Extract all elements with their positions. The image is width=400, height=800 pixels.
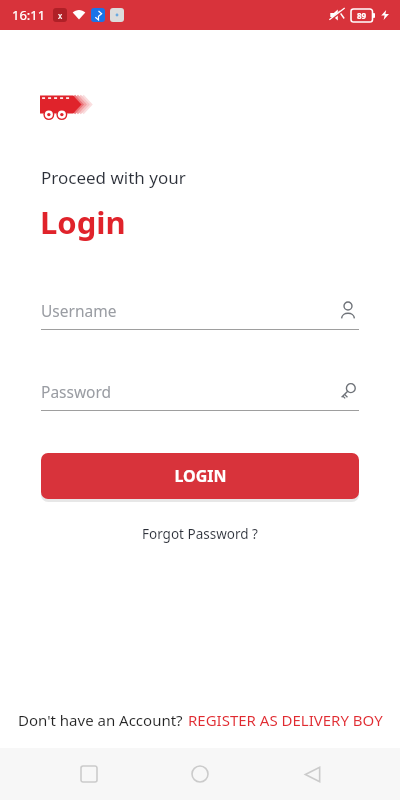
other: Username xyxy=(337,299,359,321)
button[interactable]: Forgot Password ? xyxy=(130,521,270,547)
button[interactable]: REGISTER AS DELIVERY BOY xyxy=(188,710,383,730)
staticText: x xyxy=(58,10,63,21)
button[interactable]: Password xyxy=(0,380,400,411)
staticText: LOGIN xyxy=(174,465,227,487)
button[interactable]: Back xyxy=(289,751,335,797)
button[interactable]: Username xyxy=(0,299,400,330)
staticText: Forgot Password ? xyxy=(142,525,258,543)
staticText: 89 xyxy=(357,10,367,21)
button[interactable]: Recent apps xyxy=(66,751,112,797)
staticText: Username xyxy=(41,300,337,321)
staticText: Don't have an Account? xyxy=(18,710,183,730)
staticText: Login xyxy=(40,201,126,243)
other: Password xyxy=(337,380,359,402)
button[interactable]: LOGIN xyxy=(41,453,359,499)
button[interactable]: Home xyxy=(177,751,223,797)
staticText: REGISTER AS DELIVERY BOY xyxy=(188,710,383,730)
staticText: Password xyxy=(41,381,337,402)
staticText: Proceed with your xyxy=(41,166,186,189)
staticText: 16:11 xyxy=(12,6,46,24)
